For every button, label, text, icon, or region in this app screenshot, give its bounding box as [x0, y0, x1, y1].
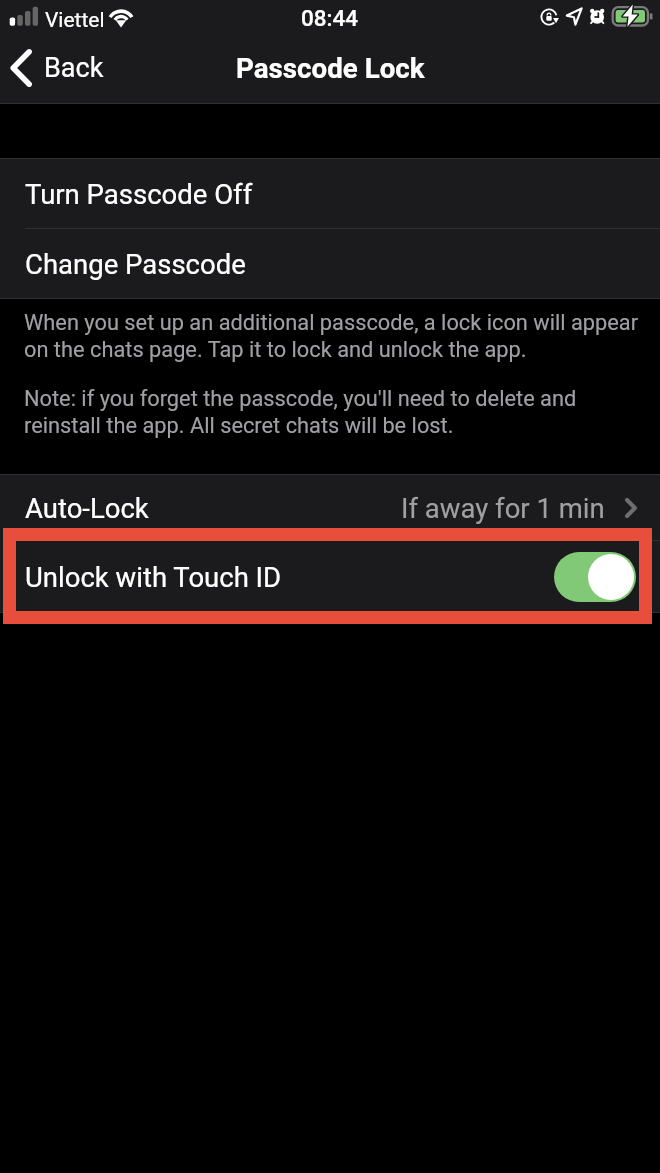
button[interactable]: Auto-Lock [0, 475, 660, 540]
staticText: Passcode Lock [236, 52, 425, 84]
button[interactable]: Unlock with Touch ID [554, 552, 636, 602]
staticText: Unlock with Touch ID [25, 561, 282, 593]
button[interactable]: Change Passcode [0, 229, 660, 298]
staticText: Viettel [45, 8, 105, 33]
staticText: When you set up an additional passcode, … [24, 310, 640, 362]
staticText: If away for 1 min [401, 492, 605, 524]
staticText: Turn Passcode Off [25, 178, 253, 210]
staticText: Auto-Lock [25, 492, 149, 524]
staticText: Change Passcode [25, 248, 246, 280]
staticText: Note: if you forget the passcode, you'll… [24, 386, 640, 438]
staticText: Back [44, 52, 104, 84]
button[interactable]: Turn Passcode Off [0, 159, 660, 228]
button[interactable]: Back [0, 38, 120, 97]
button[interactable]: Unlock with Touch ID [0, 541, 660, 612]
staticText: 08:44 [301, 5, 359, 31]
